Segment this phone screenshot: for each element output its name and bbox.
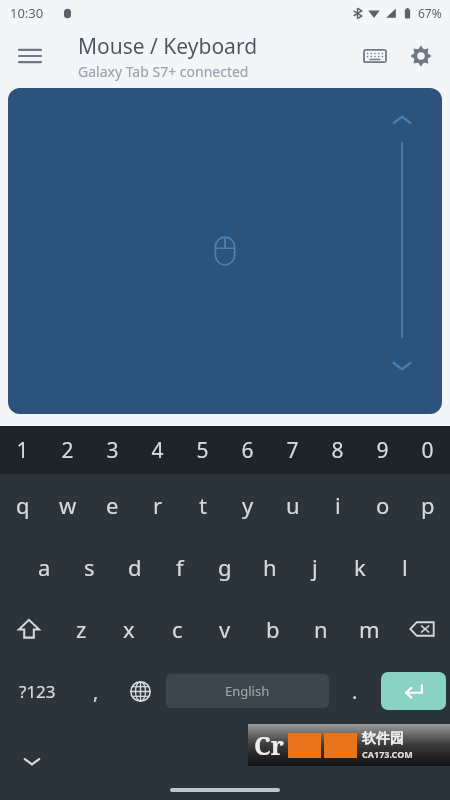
staticText: 0 [421,436,434,465]
button[interactable]: o [360,474,405,536]
button[interactable]: v [201,598,249,660]
staticText: Galaxy Tab S7+ connected [78,62,249,81]
staticText: e [106,490,119,520]
staticText: y [242,490,254,520]
button[interactable]: Show keyboard [352,33,398,79]
button[interactable]: Open navigation menu [8,34,52,78]
button[interactable]: Settings [398,33,444,79]
staticText: 2 [61,436,74,465]
button[interactable]: Backspace [393,598,450,660]
staticText: Cr [254,728,284,762]
button[interactable]: u [270,474,315,536]
staticText: 9 [376,436,389,465]
button[interactable]: 0 [405,426,450,474]
staticText: a [38,552,51,582]
button[interactable]: l [382,536,427,598]
button[interactable]: Scroll [390,114,414,404]
button[interactable]: e [90,474,135,536]
staticText: 10:30 [10,4,44,22]
button[interactable]: English [166,674,329,708]
button[interactable]: n [297,598,345,660]
staticText: 软件园 [362,730,404,748]
button[interactable]: i [315,474,360,536]
button[interactable]: ?123 [0,660,74,722]
button[interactable]: a [22,536,67,598]
button[interactable]: h [247,536,292,598]
staticText: l [402,552,408,582]
button[interactable]: 1 [0,426,45,474]
staticText: x [123,614,135,644]
button[interactable]: g [202,536,247,598]
staticText: , [93,678,99,705]
button[interactable]: b [249,598,297,660]
staticText: 1 [16,436,29,465]
staticText: 4 [151,436,164,465]
staticText: 5 [196,436,209,465]
staticText: English [225,682,270,700]
button[interactable]: f [157,536,202,598]
staticText: 3 [106,436,119,465]
button[interactable]: s [67,536,112,598]
button[interactable]: Change language [118,660,162,722]
staticText: i [335,490,341,520]
button[interactable]: 5 [180,426,225,474]
button[interactable]: z [57,598,105,660]
staticText: n [314,614,328,644]
staticText: w [59,490,77,520]
staticText: 67% [418,5,442,21]
staticText: r [153,490,163,520]
staticText: c [172,614,183,644]
staticText: j [312,552,318,582]
button[interactable]: Enter [381,672,446,710]
button[interactable]: p [405,474,450,536]
button[interactable]: y [225,474,270,536]
button[interactable]: Hide keyboard [12,741,52,781]
button[interactable]: j [292,536,337,598]
staticText: o [376,490,390,520]
button[interactable]: t [180,474,225,536]
button[interactable]: 4 [135,426,180,474]
button[interactable]: 7 [270,426,315,474]
button[interactable]: 8 [315,426,360,474]
button[interactable]: q [0,474,45,536]
staticText: . [352,678,358,705]
staticText: Mouse / Keyboard [78,32,258,61]
staticText: z [76,614,87,644]
button[interactable]: x [105,598,153,660]
button[interactable]: 2 [45,426,90,474]
button[interactable]: w [45,474,90,536]
staticText: g [218,552,232,582]
button[interactable]: r [135,474,180,536]
staticText: d [128,552,142,582]
staticText: m [359,614,380,644]
staticText: t [199,490,207,520]
button[interactable]: k [337,536,382,598]
staticText: 7 [286,436,299,465]
staticText: v [219,614,231,644]
button[interactable]: 3 [90,426,135,474]
staticText: 8 [331,436,344,465]
staticText: b [266,614,280,644]
button[interactable]: . [333,660,377,722]
staticText: k [354,552,366,582]
staticText: s [84,552,95,582]
staticText: u [286,490,300,520]
button[interactable]: Shift [0,598,57,660]
staticText: ?123 [19,680,56,703]
staticText: 6 [241,436,254,465]
staticText: h [263,552,277,582]
staticText: f [176,552,184,582]
button[interactable]: m [345,598,393,660]
staticText: CA173.COM [362,748,413,760]
button[interactable]: 9 [360,426,405,474]
staticText: q [16,490,30,520]
button[interactable]: c [153,598,201,660]
staticText: p [421,490,435,520]
button[interactable]: d [112,536,157,598]
button[interactable]: , [74,660,118,722]
button[interactable]: 6 [225,426,270,474]
button[interactable]: Touchpad [8,88,442,414]
